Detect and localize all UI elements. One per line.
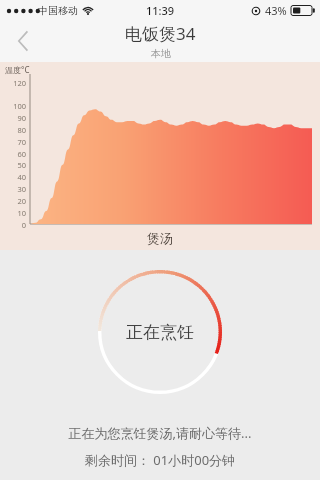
staticText: 40 — [3, 172, 26, 182]
staticText: 剩余时间： 01小时00分钟 — [0, 451, 320, 469]
staticText: 100 — [3, 101, 26, 111]
staticText: 120 — [3, 78, 26, 88]
staticText: 10 — [3, 208, 26, 218]
button[interactable]: Back — [0, 20, 46, 62]
staticText: 43% — [265, 3, 287, 18]
staticText: 11:39 — [146, 3, 175, 18]
staticText: 正在烹饪 — [126, 322, 194, 343]
staticText: 温度°C — [5, 64, 30, 75]
staticText: 电饭煲34 — [125, 22, 196, 45]
staticText: 50 — [3, 160, 26, 170]
staticText: 中国移动 — [38, 4, 78, 17]
staticText: 本地 — [151, 47, 171, 60]
staticText: 0 — [3, 220, 26, 230]
staticText: 70 — [3, 137, 26, 147]
staticText: 80 — [3, 125, 26, 135]
staticText: 60 — [3, 149, 26, 159]
staticText: 90 — [3, 113, 26, 123]
staticText: 20 — [3, 196, 26, 206]
staticText: 煲汤 — [147, 230, 173, 246]
staticText: 30 — [3, 184, 26, 194]
staticText: 正在为您烹饪煲汤,请耐心等待... — [0, 424, 320, 442]
